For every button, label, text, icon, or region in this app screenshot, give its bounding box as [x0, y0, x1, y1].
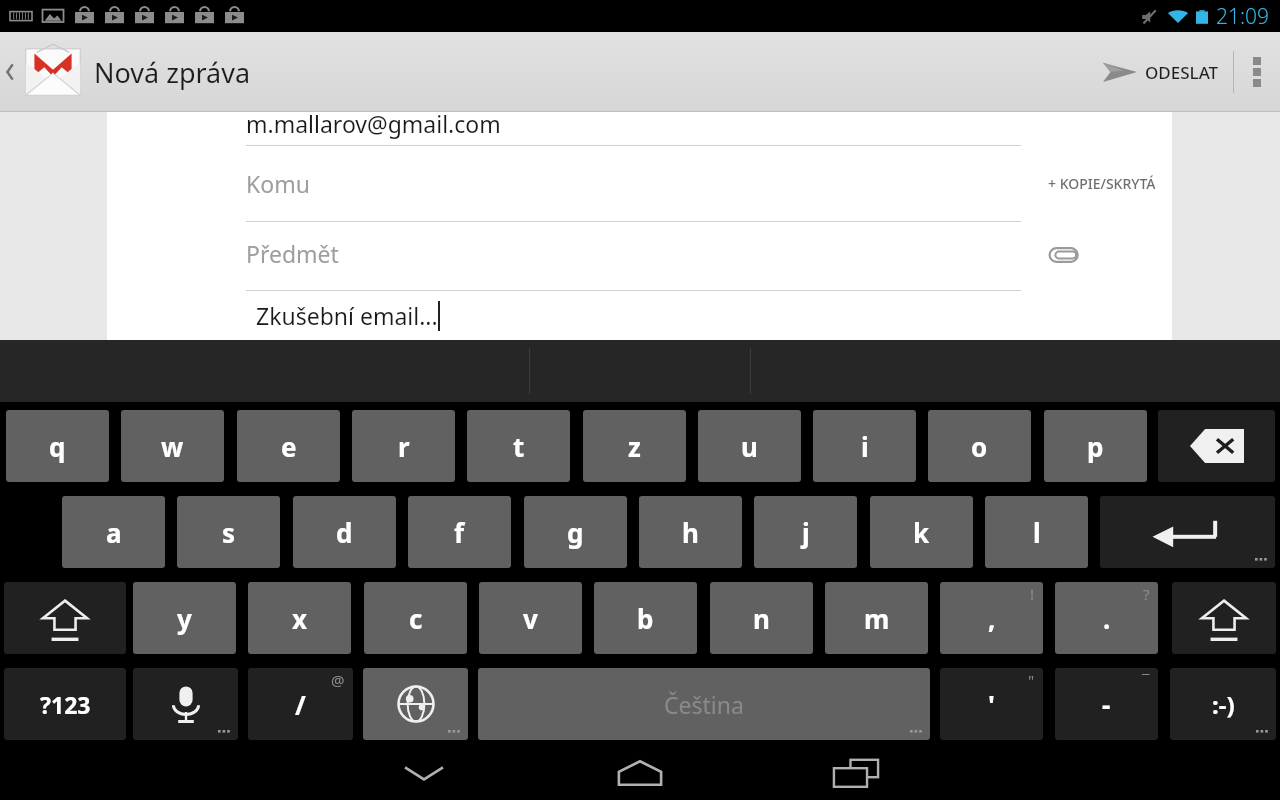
button[interactable]: Zkušební email...: [256, 300, 440, 331]
staticText: ,: [988, 601, 996, 636]
staticText: w: [161, 429, 184, 464]
button[interactable]: t: [467, 410, 570, 482]
staticText: m.mallarov@gmail.com: [246, 108, 501, 139]
button[interactable]: o: [928, 410, 1031, 482]
button[interactable]: :-): [1170, 668, 1276, 740]
button[interactable]: Back: [0, 32, 251, 112]
staticText: ‾: [1142, 670, 1150, 690]
button[interactable]: z: [583, 410, 686, 482]
staticText: g: [567, 515, 584, 550]
button[interactable]: f: [408, 496, 511, 568]
button[interactable]: ,: [940, 582, 1043, 654]
staticText: y: [177, 601, 192, 636]
staticText: ?123: [40, 689, 91, 720]
button[interactable]: l: [985, 496, 1088, 568]
staticText: t: [513, 429, 525, 464]
staticText: 21:09: [1216, 2, 1270, 31]
staticText: d: [336, 515, 353, 550]
staticText: Předmět: [246, 238, 339, 269]
button[interactable]: More options: [1234, 32, 1280, 112]
button[interactable]: ?123: [4, 668, 126, 740]
staticText: k: [913, 515, 930, 550]
button[interactable]: u: [698, 410, 801, 482]
button[interactable]: p: [1044, 410, 1147, 482]
staticText: Nová zpráva: [94, 54, 251, 91]
staticText: e: [281, 429, 297, 464]
staticText: h: [682, 515, 699, 550]
staticText: n: [753, 601, 770, 636]
button[interactable]: Shift: [4, 582, 126, 654]
button[interactable]: Enter: [1100, 496, 1275, 568]
other: Back: [4, 60, 18, 84]
staticText: !: [1030, 584, 1035, 604]
staticText: l: [1033, 515, 1041, 550]
button[interactable]: /: [248, 668, 353, 740]
button[interactable]: h: [639, 496, 742, 568]
button[interactable]: Předmět: [246, 222, 1021, 291]
staticText: p: [1087, 429, 1104, 464]
staticText: o: [971, 429, 988, 464]
staticText: .: [1103, 601, 1111, 636]
staticText: i: [861, 429, 869, 464]
staticText: a: [106, 515, 122, 550]
staticText: x: [292, 601, 308, 636]
button[interactable]: Change language: [363, 668, 468, 740]
staticText: + KOPIE/SKRYTÁ: [1048, 174, 1156, 193]
staticText: Komu: [246, 168, 310, 199]
button[interactable]: j: [754, 496, 857, 568]
button[interactable]: g: [524, 496, 627, 568]
button[interactable]: Attach file: [1046, 238, 1082, 272]
staticText: r: [398, 429, 410, 464]
button[interactable]: ': [940, 668, 1043, 740]
button[interactable]: b: [594, 582, 697, 654]
button[interactable]: .: [1055, 582, 1158, 654]
staticText: ': [988, 687, 995, 722]
button[interactable]: Voice input: [133, 668, 238, 740]
button[interactable]: Čeština: [478, 668, 930, 740]
staticText: @: [331, 670, 345, 690]
staticText: /: [295, 687, 306, 722]
staticText: ": [1028, 670, 1035, 690]
button[interactable]: a: [62, 496, 165, 568]
staticText: q: [49, 429, 66, 464]
button[interactable]: Shift: [1172, 582, 1276, 654]
staticText: Zkušební email...: [256, 300, 438, 331]
staticText: s: [222, 515, 236, 550]
button[interactable]: w: [121, 410, 224, 482]
button[interactable]: r: [352, 410, 455, 482]
staticText: j: [802, 515, 810, 550]
button[interactable]: ODESLAT: [1089, 32, 1233, 112]
staticText: u: [741, 429, 758, 464]
button[interactable]: q: [6, 410, 109, 482]
staticText: c: [409, 601, 423, 636]
staticText: v: [523, 601, 538, 636]
staticText: f: [454, 515, 465, 550]
button[interactable]: k: [870, 496, 973, 568]
staticText: :-): [1212, 688, 1235, 721]
button[interactable]: Komu: [246, 152, 1021, 222]
button[interactable]: v: [479, 582, 582, 654]
staticText: z: [628, 429, 641, 464]
button[interactable]: -: [1055, 668, 1158, 740]
staticText: ?: [1143, 584, 1150, 604]
button[interactable]: s: [177, 496, 280, 568]
button[interactable]: n: [710, 582, 813, 654]
button[interactable]: m: [825, 582, 928, 654]
button[interactable]: i: [813, 410, 916, 482]
button[interactable]: y: [133, 582, 236, 654]
button[interactable]: Home: [580, 745, 700, 800]
button[interactable]: Hide keyboard: [364, 745, 484, 800]
staticText: -: [1102, 687, 1111, 722]
staticText: b: [637, 601, 654, 636]
button[interactable]: e: [237, 410, 340, 482]
button[interactable]: c: [364, 582, 467, 654]
staticText: ODESLAT: [1145, 61, 1219, 84]
staticText: Čeština: [664, 689, 744, 720]
button[interactable]: + KOPIE/SKRYTÁ: [1048, 174, 1156, 193]
button[interactable]: Recent apps: [796, 745, 916, 800]
button[interactable]: x: [248, 582, 351, 654]
staticText: m: [864, 601, 890, 636]
button[interactable]: Backspace: [1158, 410, 1275, 482]
button[interactable]: d: [293, 496, 396, 568]
